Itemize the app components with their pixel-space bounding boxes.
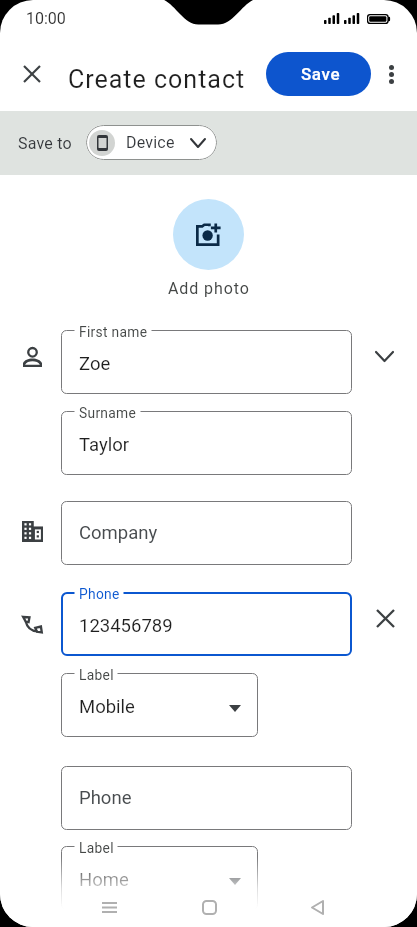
button[interactable]: Label [61, 846, 258, 910]
button[interactable]: More name fields [364, 336, 404, 376]
staticText: 123456789 [79, 615, 173, 637]
staticText: Surname [79, 405, 137, 421]
staticText: Save to [18, 134, 72, 153]
button[interactable]: Add photo [173, 199, 244, 270]
staticText: Phone [79, 586, 120, 602]
button[interactable]: First name [61, 330, 352, 394]
button[interactable]: Company [61, 501, 352, 565]
button[interactable]: Phone [61, 766, 352, 830]
staticText: Label [79, 840, 114, 856]
staticText: Mobile [79, 696, 135, 718]
staticText: Device [126, 133, 175, 152]
button[interactable]: Remove phone [364, 597, 406, 639]
staticText: Add photo [168, 279, 250, 298]
staticText: Zoe [79, 353, 111, 375]
button[interactable]: Back [299, 889, 335, 925]
button[interactable]: Close [10, 52, 54, 96]
button[interactable]: Home [191, 889, 227, 925]
staticText: First name [79, 324, 148, 340]
staticText: Create contact [68, 65, 246, 94]
button[interactable]: Recents [91, 889, 127, 925]
button[interactable]: More options [369, 52, 413, 96]
staticText: Home [79, 869, 129, 891]
button[interactable]: Phone [61, 592, 352, 656]
button[interactable]: Save [266, 52, 371, 96]
staticText: Save [301, 64, 341, 84]
staticText: Phone [79, 787, 132, 809]
button[interactable]: Label [61, 673, 258, 737]
staticText: 10:00 [26, 9, 66, 28]
button[interactable]: Device [86, 125, 217, 160]
button[interactable]: Surname [61, 411, 352, 475]
staticText: Company [79, 522, 158, 544]
staticText: Taylor [79, 434, 130, 456]
staticText: Label [79, 667, 114, 683]
